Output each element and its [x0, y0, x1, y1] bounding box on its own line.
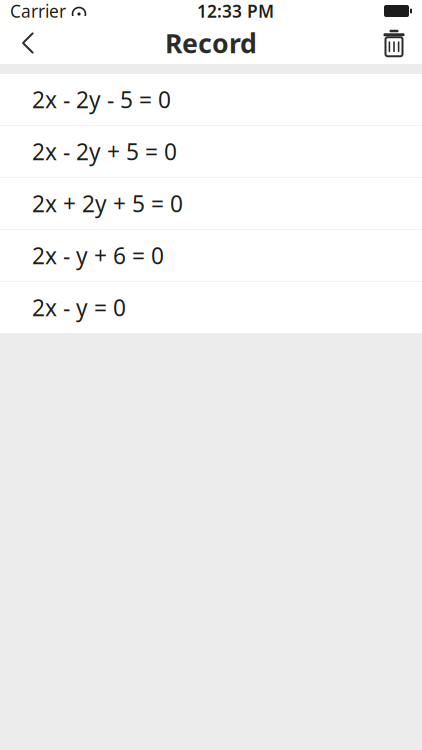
staticText: 2x - 2y - 5 = 0 [32, 84, 171, 114]
button[interactable]: 2x + 2y + 5 = 0 [0, 178, 422, 229]
staticText: Carrier [10, 0, 66, 22]
button[interactable]: 2x - 2y + 5 = 0 [0, 126, 422, 177]
staticText: 2x + 2y + 5 = 0 [32, 188, 183, 218]
button[interactable]: Back [6, 21, 50, 65]
staticText: Record [165, 25, 257, 61]
button[interactable]: 2x - 2y - 5 = 0 [0, 74, 422, 125]
button[interactable]: Delete [372, 21, 416, 65]
button[interactable]: 2x - y + 6 = 0 [0, 230, 422, 281]
staticText: 2x - 2y + 5 = 0 [32, 136, 177, 166]
staticText: 12:33 PM [197, 0, 274, 22]
button[interactable]: 2x - y = 0 [0, 282, 422, 333]
staticText: 2x - y = 0 [32, 292, 126, 322]
staticText: 2x - y + 6 = 0 [32, 240, 164, 270]
